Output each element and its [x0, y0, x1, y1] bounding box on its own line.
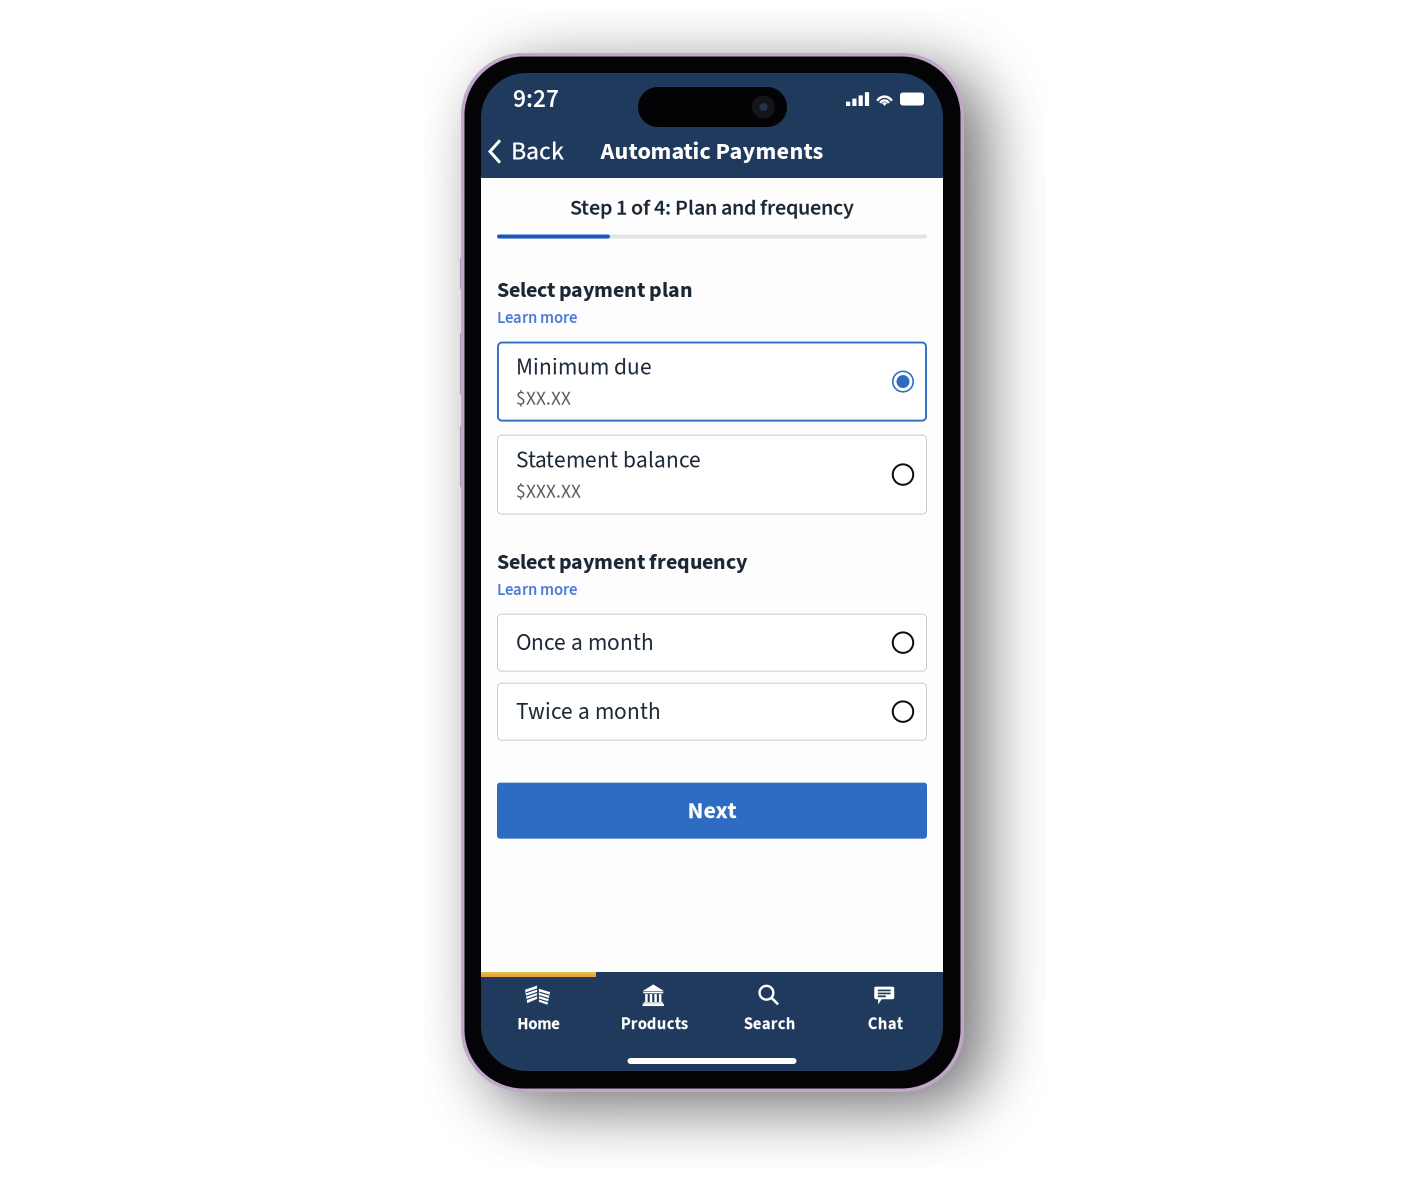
button[interactable]: Twice a month — [497, 683, 927, 741]
staticText: Select payment plan — [497, 274, 693, 306]
staticText: 9:27 — [513, 81, 559, 117]
staticText: Minimum due — [516, 351, 652, 384]
button[interactable]: Learn more — [497, 578, 577, 602]
button[interactable]: Chat — [827, 986, 943, 1034]
staticText: Once a month — [516, 626, 654, 659]
staticText: Select payment frequency — [497, 547, 747, 578]
button[interactable]: Back — [481, 128, 572, 174]
staticText: Back — [511, 133, 564, 170]
staticText: Next — [687, 794, 736, 828]
button[interactable]: Search — [712, 986, 827, 1034]
staticText: Products — [621, 1012, 688, 1036]
button[interactable]: Next — [497, 783, 927, 839]
staticText: Statement balance — [516, 444, 701, 477]
staticText: Automatic Payments — [600, 134, 823, 169]
button[interactable]: Statement balance — [497, 435, 927, 515]
staticText: $XXX.XX — [516, 478, 581, 505]
button[interactable]: Products — [596, 986, 712, 1034]
staticText: Search — [744, 1012, 796, 1036]
staticText: Learn more — [497, 306, 577, 329]
staticText: Step 1 of 4: Plan and frequency — [570, 192, 854, 223]
button[interactable]: Once a month — [497, 614, 927, 672]
staticText: $XX.XX — [516, 385, 571, 412]
staticText: Twice a month — [516, 695, 661, 728]
staticText: Home — [517, 1012, 560, 1036]
button[interactable]: Learn more — [497, 306, 577, 329]
button[interactable]: Minimum due — [497, 342, 927, 422]
button[interactable]: Home — [481, 986, 596, 1034]
staticText: Learn more — [497, 578, 577, 602]
staticText: Chat — [868, 1012, 903, 1036]
